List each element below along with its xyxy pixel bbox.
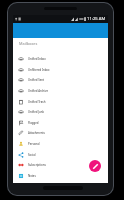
- button[interactable]: Unified Sent: [13, 74, 108, 85]
- staticText: Social: [28, 153, 36, 157]
- button[interactable]: Unified Inbox: [13, 53, 108, 64]
- staticText: Attachments: [28, 131, 45, 135]
- button[interactable]: Flagged: [13, 117, 108, 128]
- button[interactable]: Personal: [13, 138, 108, 149]
- button[interactable]: Notes: [13, 170, 108, 181]
- staticText: Mailboxes: [19, 41, 38, 46]
- staticText: Unified Archive: [28, 89, 48, 93]
- staticText: Unified Junk: [28, 110, 44, 114]
- staticText: Personal: [28, 142, 40, 146]
- staticText: Unified Trash: [28, 100, 46, 104]
- staticText: Notes: [28, 174, 36, 178]
- staticText: Unfiltered Inbox: [28, 68, 50, 72]
- button[interactable]: Subscriptions: [13, 159, 108, 170]
- button[interactable]: Unified Trash: [13, 96, 108, 107]
- staticText: Flagged: [28, 121, 39, 125]
- button[interactable]: Unfiltered Inbox: [13, 64, 108, 75]
- staticText: Unified Inbox: [28, 57, 46, 61]
- button[interactable]: Unified Junk: [13, 106, 108, 117]
- button[interactable]: Compose message: [89, 160, 101, 172]
- button[interactable]: Social: [13, 149, 108, 160]
- button[interactable]: Unified Archive: [13, 85, 108, 96]
- staticText: 11:25 AM: [87, 16, 106, 22]
- staticText: Unified Sent: [28, 78, 45, 82]
- button[interactable]: Attachments: [13, 127, 108, 138]
- staticText: Subscriptions: [28, 163, 46, 167]
